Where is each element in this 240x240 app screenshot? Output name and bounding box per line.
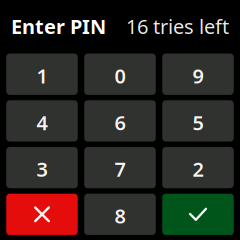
staticText: 8 <box>114 202 125 229</box>
staticText: 5 <box>192 109 203 136</box>
staticText: 9 <box>192 62 203 89</box>
button[interactable]: 9 <box>162 54 234 95</box>
button[interactable]: 3 <box>6 147 78 188</box>
button[interactable]: 1 <box>6 54 78 95</box>
button[interactable]: 0 <box>84 54 156 95</box>
staticText: 7 <box>114 156 125 182</box>
button[interactable]: 8 <box>84 194 156 235</box>
staticText: 4 <box>36 109 47 136</box>
button[interactable]: 7 <box>84 147 156 188</box>
staticText: 16 tries left <box>126 13 229 40</box>
staticText: 2 <box>192 156 203 182</box>
button[interactable]: 4 <box>6 100 78 142</box>
staticText: 1 <box>36 62 47 89</box>
staticText: 0 <box>114 62 125 89</box>
button[interactable]: Confirm <box>162 194 234 235</box>
button[interactable]: Delete <box>6 194 78 235</box>
button[interactable]: 6 <box>84 100 156 142</box>
staticText: Enter PIN <box>11 13 106 40</box>
staticText: 6 <box>114 109 125 136</box>
button[interactable]: 2 <box>162 147 234 188</box>
button[interactable]: 5 <box>162 100 234 142</box>
staticText: 3 <box>36 156 47 182</box>
